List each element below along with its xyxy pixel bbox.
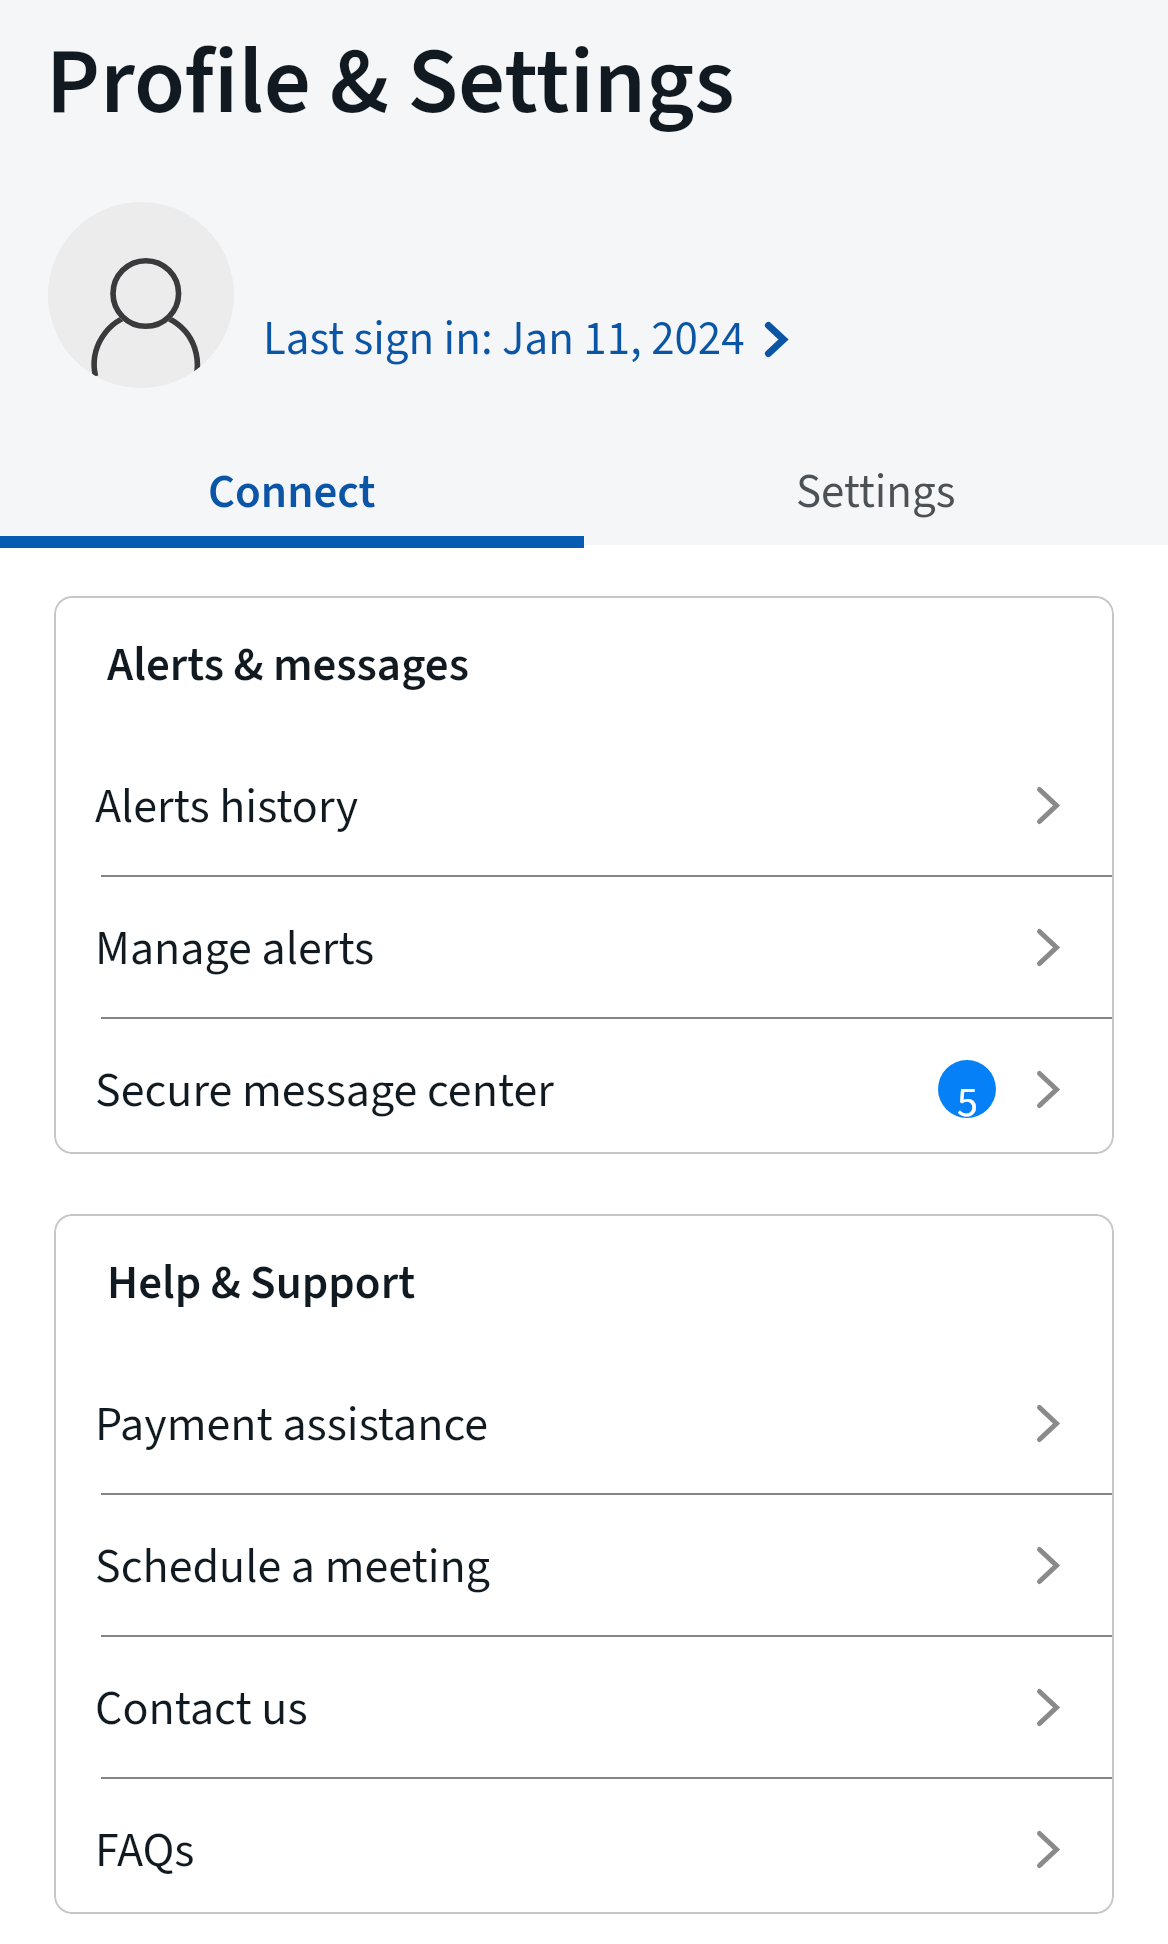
staticText: Alerts history xyxy=(95,773,359,841)
staticText: Last sign in: Jan 11, 2024 xyxy=(263,306,745,373)
other: View last sign in details xyxy=(765,322,787,357)
staticText: Settings xyxy=(796,459,956,526)
button[interactable]: FAQs xyxy=(54,1779,1114,1914)
button[interactable]: Last sign in: Jan 11, 2024 xyxy=(263,306,795,373)
button[interactable]: Contact us xyxy=(54,1637,1114,1777)
button[interactable]: Schedule a meeting xyxy=(54,1495,1114,1635)
button[interactable]: Connect xyxy=(0,436,584,548)
staticText: Contact us xyxy=(95,1675,308,1743)
button[interactable]: Secure message center xyxy=(54,1019,1114,1154)
staticText: Manage alerts xyxy=(95,915,375,983)
staticText: Schedule a meeting xyxy=(95,1533,491,1601)
staticText: Secure message center xyxy=(95,1057,554,1125)
staticText: Help & Support xyxy=(107,1250,416,1317)
staticText: Profile & Settings xyxy=(46,17,735,149)
staticText: 5 xyxy=(957,1073,978,1118)
button[interactable]: Alerts history xyxy=(54,735,1114,875)
button[interactable]: Manage alerts xyxy=(54,877,1114,1017)
staticText: Alerts & messages xyxy=(107,632,469,699)
staticText: Payment assistance xyxy=(95,1391,489,1459)
button[interactable]: Payment assistance xyxy=(54,1353,1114,1493)
staticText: Connect xyxy=(208,459,376,526)
button[interactable]: Settings xyxy=(584,436,1168,548)
staticText: FAQs xyxy=(95,1817,195,1885)
